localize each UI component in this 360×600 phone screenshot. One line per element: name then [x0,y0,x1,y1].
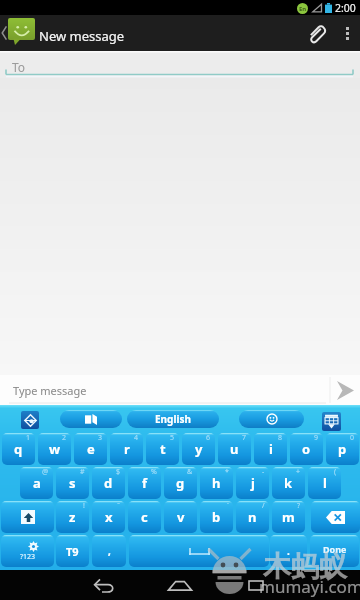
button[interactable]: Navigate up [0,15,37,51]
staticText: a [33,474,41,492]
button[interactable]: 2 [38,433,71,465]
button[interactable]: + [272,467,305,499]
staticText: ´ [227,501,229,511]
staticText: w [49,440,61,458]
staticText: 9 [314,433,319,443]
staticText: % [151,467,157,477]
staticText: Type message [13,383,87,398]
staticText: 1 [26,433,31,443]
staticText: New message [39,27,125,45]
button[interactable]: # [56,467,89,499]
staticText: p [338,440,347,458]
staticText: c [141,508,148,526]
staticText: j [251,474,255,492]
staticText: 3 [98,433,103,443]
staticText: 2:00 [335,1,356,15]
button[interactable]: 1 [2,433,35,465]
button[interactable]: 0 [326,433,359,465]
button[interactable]: 3 [74,433,107,465]
button[interactable] [60,410,122,428]
button[interactable]: - [236,467,269,499]
staticText: En [299,5,307,13]
staticText: 8 [278,433,283,443]
staticText: l [323,474,327,492]
staticText: ( [334,467,337,477]
button[interactable]: 7 [218,433,251,465]
staticText: , [108,544,111,558]
staticText: English [155,412,191,426]
button[interactable]: v [164,501,197,533]
button[interactable]: Delete [311,501,360,533]
button[interactable]: Done [310,535,359,567]
button[interactable]: Space [129,535,269,567]
button[interactable]: * [200,467,233,499]
staticText: k [284,474,293,492]
staticText: h [212,474,221,492]
button[interactable]: % [128,467,161,499]
button[interactable]: ? [272,501,305,533]
button[interactable]: ( [308,467,341,499]
staticText: * [225,467,229,477]
staticText: q [14,440,23,458]
staticText: / [262,501,265,511]
button[interactable]: @ [20,467,53,499]
staticText: & [187,467,193,477]
staticText: ?123 [20,552,36,562]
staticText: n [248,508,257,526]
staticText: + [296,467,301,477]
button[interactable]: ! [56,501,89,533]
button[interactable]: 5 [146,433,179,465]
staticText: o [302,440,311,458]
staticText: g [176,474,185,492]
button[interactable]: T9 [56,535,89,567]
button[interactable]: 6 [182,433,215,465]
staticText: s [69,474,76,492]
staticText: m [282,508,295,526]
button[interactable]: ˜ [92,501,125,533]
button[interactable]: Recent apps [218,570,294,600]
staticText: e [87,440,95,458]
button[interactable]: Shift [1,501,54,533]
staticText: 2 [62,433,67,443]
staticText: @ [42,467,49,477]
button[interactable]: 9 [290,433,323,465]
staticText: . [287,544,290,558]
button[interactable]: c [128,501,161,533]
staticText: # [80,467,85,477]
staticText: 0 [350,433,355,443]
button[interactable]: Settings and symbols [1,535,54,567]
button[interactable]: Hide keyboard [322,412,341,431]
button[interactable]: $ [92,467,125,499]
staticText: - [262,467,265,477]
button[interactable]: Home [142,570,218,600]
button[interactable]: Input method [21,411,39,429]
staticText: Done [323,543,347,555]
button[interactable]: , [92,535,126,567]
staticText: d [104,474,113,492]
button[interactable]: & [164,467,197,499]
staticText: i [269,440,273,458]
button[interactable]: . [270,535,307,567]
button[interactable]: ´ [200,501,233,533]
button[interactable]: Send [330,375,360,405]
button[interactable] [239,410,304,428]
staticText: r [124,440,130,458]
button[interactable]: More options [334,15,360,51]
staticText: 4 [134,433,139,443]
staticText: 6 [206,433,211,443]
staticText: To [12,59,26,75]
button[interactable]: Back [66,570,142,600]
staticText: ˜ [117,501,121,511]
staticText: t [160,440,166,458]
button[interactable]: Attach [298,15,334,51]
button[interactable]: / [236,501,269,533]
staticText: 7 [242,433,247,443]
staticText: f [142,474,148,492]
button[interactable]: 8 [254,433,287,465]
staticText: b [212,508,221,526]
staticText: 木蚂蚁 [263,549,347,584]
button[interactable]: 4 [110,433,143,465]
staticText: ! [83,501,85,511]
button[interactable]: English [127,410,219,428]
staticText: x [105,508,113,526]
